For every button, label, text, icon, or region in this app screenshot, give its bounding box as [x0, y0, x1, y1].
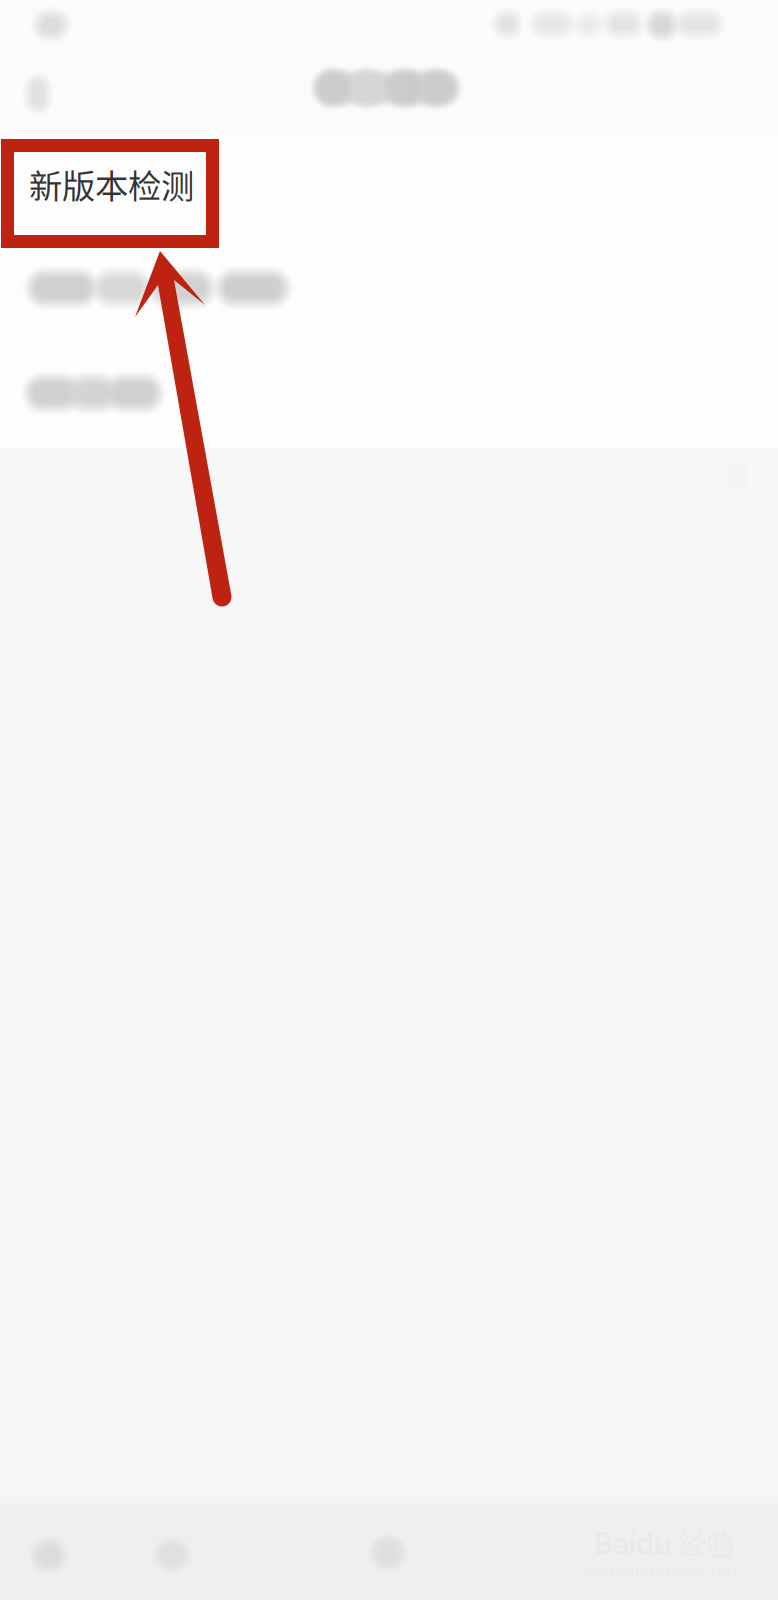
button[interactable]: Back	[3, 56, 73, 132]
button[interactable]	[0, 341, 778, 448]
button[interactable]: Recents	[342, 1497, 434, 1600]
staticText: 新版本检测	[29, 160, 194, 208]
button[interactable]	[0, 236, 778, 341]
button[interactable]: 新版本检测	[0, 132, 778, 236]
button[interactable]: Back	[3, 1499, 95, 1600]
button[interactable]: Home	[126, 1499, 218, 1600]
